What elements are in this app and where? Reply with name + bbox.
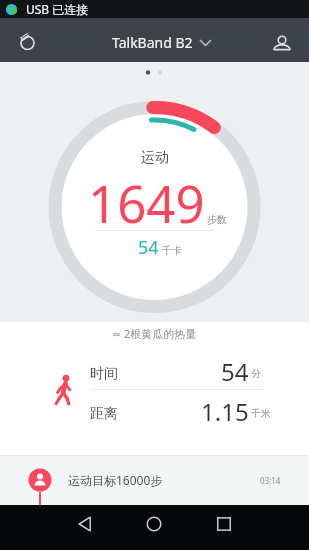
staticText: 运动 [141,149,169,167]
staticText: 1649 [88,168,205,237]
button[interactable]: TalkBand B2 [112,33,212,52]
staticText: 03:14 [260,475,281,486]
staticText: 距离 [90,405,118,423]
staticText: ≈ 2根黄瓜的热量 [112,326,197,341]
button[interactable] [271,33,292,54]
staticText: 千卡 [162,244,182,257]
staticText: 54 [138,235,159,260]
button[interactable]: 运动目标16000步 [0,455,309,505]
button[interactable] [18,32,40,54]
staticText: 1.15 [201,395,249,428]
staticText: TalkBand B2 [112,33,193,52]
staticText: 54 [221,355,249,388]
button[interactable]: 距离 [0,389,309,427]
staticText: 运动目标16000步 [68,472,163,488]
staticText: 千米 [251,407,271,420]
button[interactable] [69,508,101,540]
button[interactable] [138,508,170,540]
staticText: 分 [251,367,261,380]
staticText: USB 已连接 [26,1,89,17]
staticText: 步数 [207,213,227,226]
staticText: 时间 [90,365,118,383]
button[interactable] [208,508,240,540]
button[interactable]: 时间 [0,352,309,389]
